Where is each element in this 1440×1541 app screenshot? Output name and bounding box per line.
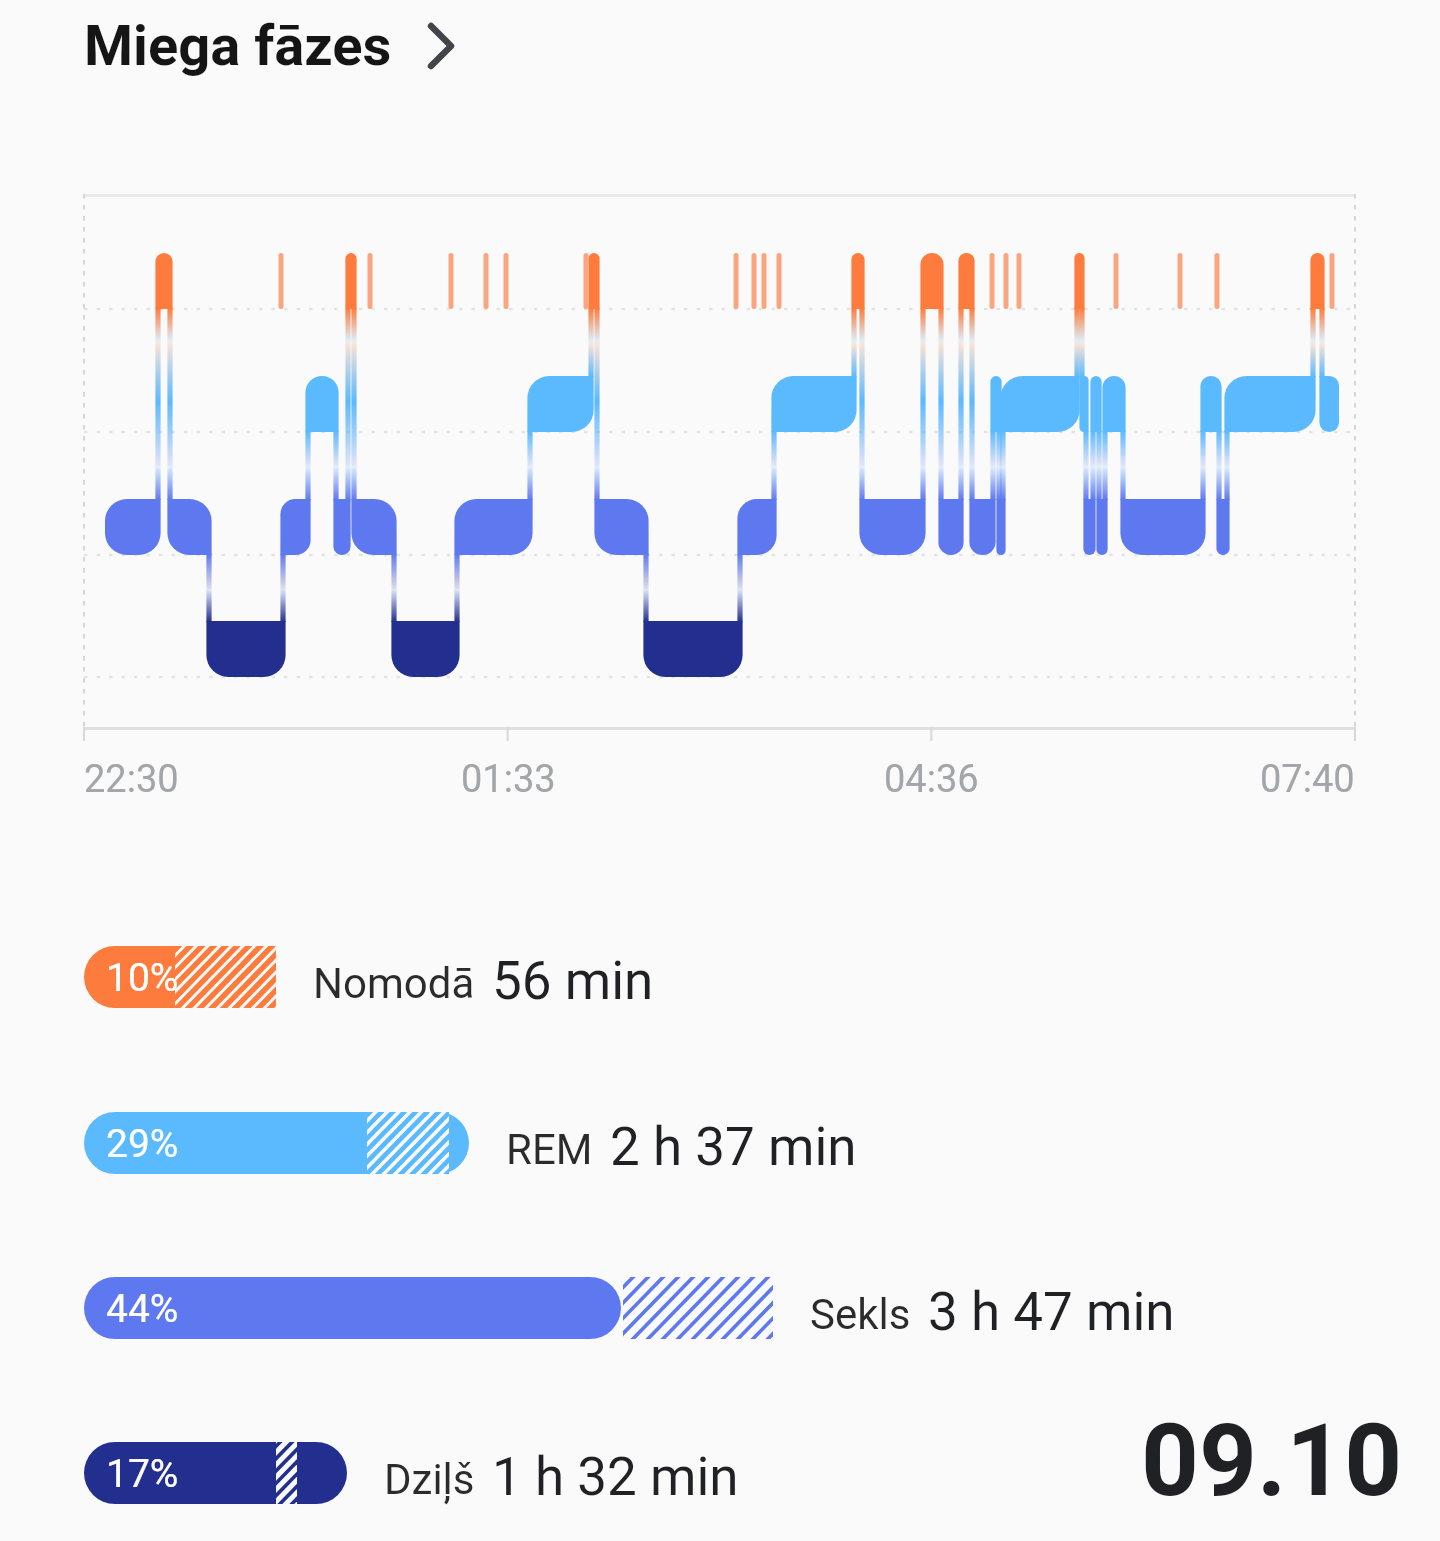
staticText: Sekls [810,1290,911,1339]
staticText: 56 min [492,950,654,1012]
staticText: 44% [106,1286,179,1332]
other: Open sleep phases [412,18,468,74]
staticText: 3 h 47 min [928,1281,1175,1343]
button[interactable]: 10% [84,946,654,1008]
staticText: 22:30 [84,757,179,802]
staticText: 07:40 [1260,757,1355,802]
button[interactable]: Miega fāzes [84,13,468,79]
staticText: Nomodā [313,959,475,1008]
staticText: REM [506,1125,593,1174]
staticText: 10% [106,955,179,1001]
button[interactable]: 29% [84,1112,857,1174]
button[interactable]: Sleep stage chart [84,194,1355,727]
staticText: 17% [106,1451,179,1497]
button[interactable]: 17% [84,1442,739,1504]
staticText: Dziļš [384,1455,475,1504]
staticText: Miega fāzes [84,13,392,79]
button[interactable]: 44% [84,1277,1175,1339]
staticText: 09.10 [1141,1401,1403,1519]
staticText: 2 h 37 min [610,1116,857,1178]
staticText: 01:33 [461,757,556,802]
staticText: 29% [106,1121,179,1167]
staticText: 1 h 32 min [492,1446,739,1508]
staticText: 04:36 [884,757,979,802]
